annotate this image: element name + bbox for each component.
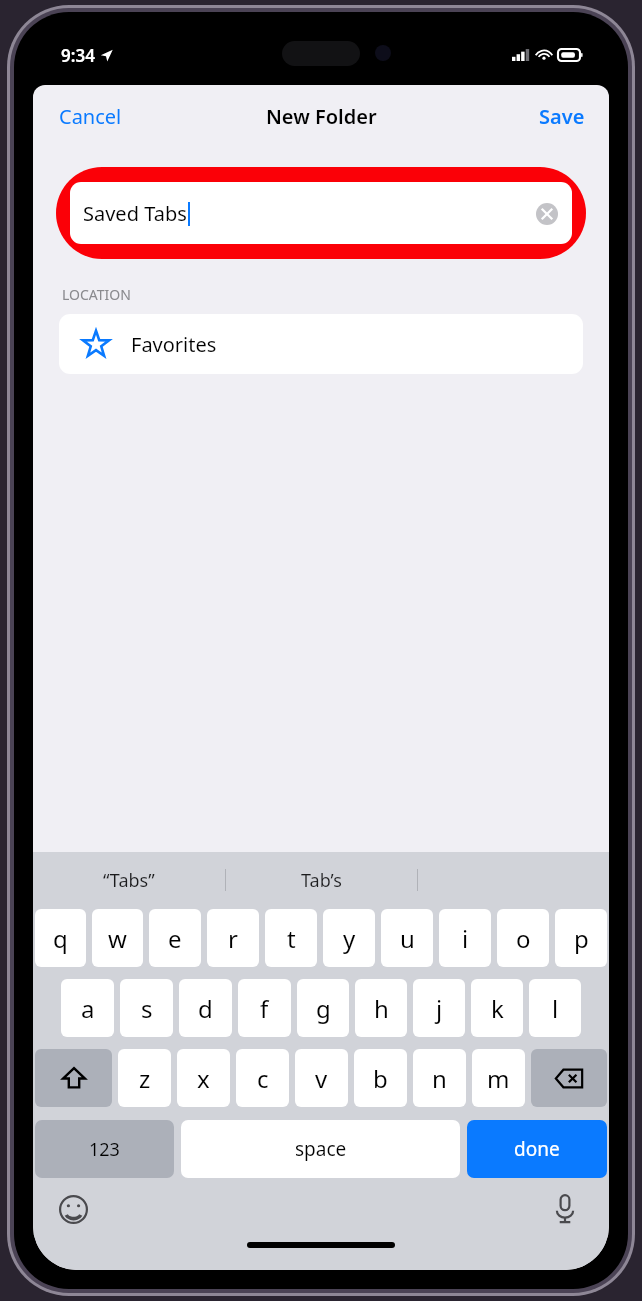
button[interactable]: e (149, 909, 201, 967)
button[interactable]: d (179, 979, 232, 1037)
staticText: h (374, 992, 389, 1025)
button[interactable]: l (529, 979, 581, 1037)
staticText: n (432, 1062, 447, 1095)
button[interactable]: Favorites (59, 314, 583, 374)
staticText: u (400, 922, 415, 955)
staticText: Save (539, 103, 585, 130)
button[interactable]: g (297, 979, 349, 1037)
button[interactable]: n (413, 1049, 466, 1107)
staticText: o (516, 922, 531, 955)
staticText: q (53, 922, 68, 955)
staticText: w (108, 922, 127, 955)
staticText: a (81, 992, 95, 1025)
button[interactable]: u (381, 909, 433, 967)
staticText: done (514, 1136, 560, 1162)
button[interactable]: w (92, 909, 143, 967)
staticText: p (574, 922, 589, 955)
button[interactable]: “Tabs” (33, 852, 225, 908)
staticText: y (343, 922, 356, 955)
staticText: t (287, 922, 296, 955)
button[interactable]: t (265, 909, 317, 967)
staticText: Cancel (59, 103, 122, 130)
staticText: Tab’s (301, 868, 342, 893)
button[interactable]: Save (527, 95, 609, 138)
staticText: g (316, 992, 331, 1025)
button[interactable]: Backspace (531, 1049, 607, 1107)
button[interactable]: x (177, 1049, 230, 1107)
staticText: v (315, 1062, 328, 1095)
staticText: m (487, 1062, 510, 1095)
staticText: j (436, 992, 443, 1025)
staticText: s (141, 992, 153, 1025)
button[interactable]: 123 (35, 1120, 174, 1178)
staticText: Saved Tabs (83, 200, 187, 227)
button[interactable]: c (236, 1049, 289, 1107)
staticText: New Folder (266, 103, 377, 130)
button[interactable]: j (413, 979, 465, 1037)
button[interactable]: i (439, 909, 491, 967)
staticText: e (168, 922, 182, 955)
staticText: r (228, 922, 238, 955)
staticText: x (197, 1062, 210, 1095)
button[interactable]: v (295, 1049, 348, 1107)
button[interactable]: Shift (35, 1049, 112, 1107)
button[interactable]: Saved Tabs (70, 182, 572, 244)
button[interactable]: o (497, 909, 549, 967)
button[interactable]: Clear text (536, 203, 558, 225)
button[interactable]: Tab’s (226, 852, 417, 908)
staticText: b (373, 1062, 388, 1095)
button[interactable]: k (471, 979, 523, 1037)
button[interactable]: r (207, 909, 259, 967)
staticText: i (462, 922, 469, 955)
staticText: k (491, 992, 504, 1025)
button[interactable]: space (181, 1120, 460, 1178)
button[interactable]: f (238, 979, 291, 1037)
staticText: f (260, 992, 269, 1025)
staticText: l (552, 992, 559, 1025)
button[interactable]: done (467, 1120, 607, 1178)
staticText: d (198, 992, 213, 1025)
button[interactable]: y (323, 909, 375, 967)
button[interactable]: a (61, 979, 114, 1037)
button[interactable]: s (120, 979, 173, 1037)
button[interactable]: p (555, 909, 607, 967)
staticText: c (257, 1062, 269, 1095)
staticText: z (139, 1062, 151, 1095)
button[interactable]: b (354, 1049, 407, 1107)
button[interactable]: Cancel (33, 95, 134, 138)
staticText: space (295, 1136, 347, 1162)
button[interactable]: Dictation (543, 1187, 587, 1231)
button[interactable]: q (35, 909, 86, 967)
staticText: “Tabs” (103, 868, 155, 893)
button[interactable]: h (355, 979, 407, 1037)
staticText: LOCATION (62, 285, 131, 304)
staticText: 123 (89, 1137, 120, 1162)
button[interactable]: Emoji keyboard (51, 1187, 95, 1231)
button[interactable]: m (472, 1049, 525, 1107)
button[interactable]: z (118, 1049, 171, 1107)
staticText: Favorites (131, 331, 217, 358)
staticText: 9:34 (61, 44, 95, 67)
